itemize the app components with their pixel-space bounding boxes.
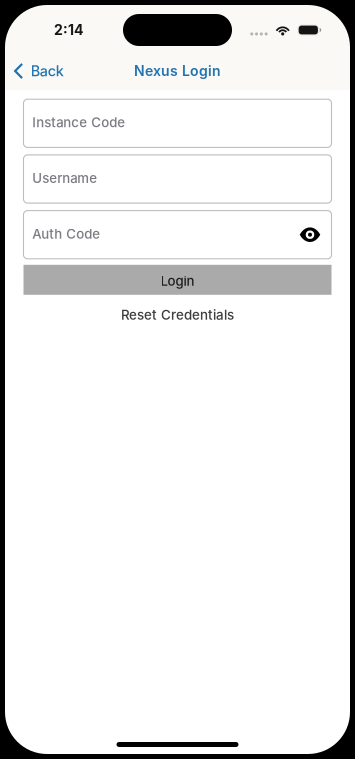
button[interactable]: Show Auth Code: [295, 220, 320, 250]
staticText: Back: [31, 62, 64, 80]
staticText: Username: [32, 170, 97, 186]
button[interactable]: Reset Credentials: [109, 302, 246, 329]
staticText: Nexus Login: [134, 62, 221, 79]
staticText: Reset Credentials: [121, 307, 234, 323]
button[interactable]: Login: [23, 265, 331, 295]
staticText: Login: [160, 273, 194, 289]
staticText: Instance Code: [32, 114, 125, 130]
button[interactable]: Back: [5, 53, 72, 89]
staticText: 2:14: [54, 21, 83, 38]
staticText: Auth Code: [32, 226, 100, 242]
